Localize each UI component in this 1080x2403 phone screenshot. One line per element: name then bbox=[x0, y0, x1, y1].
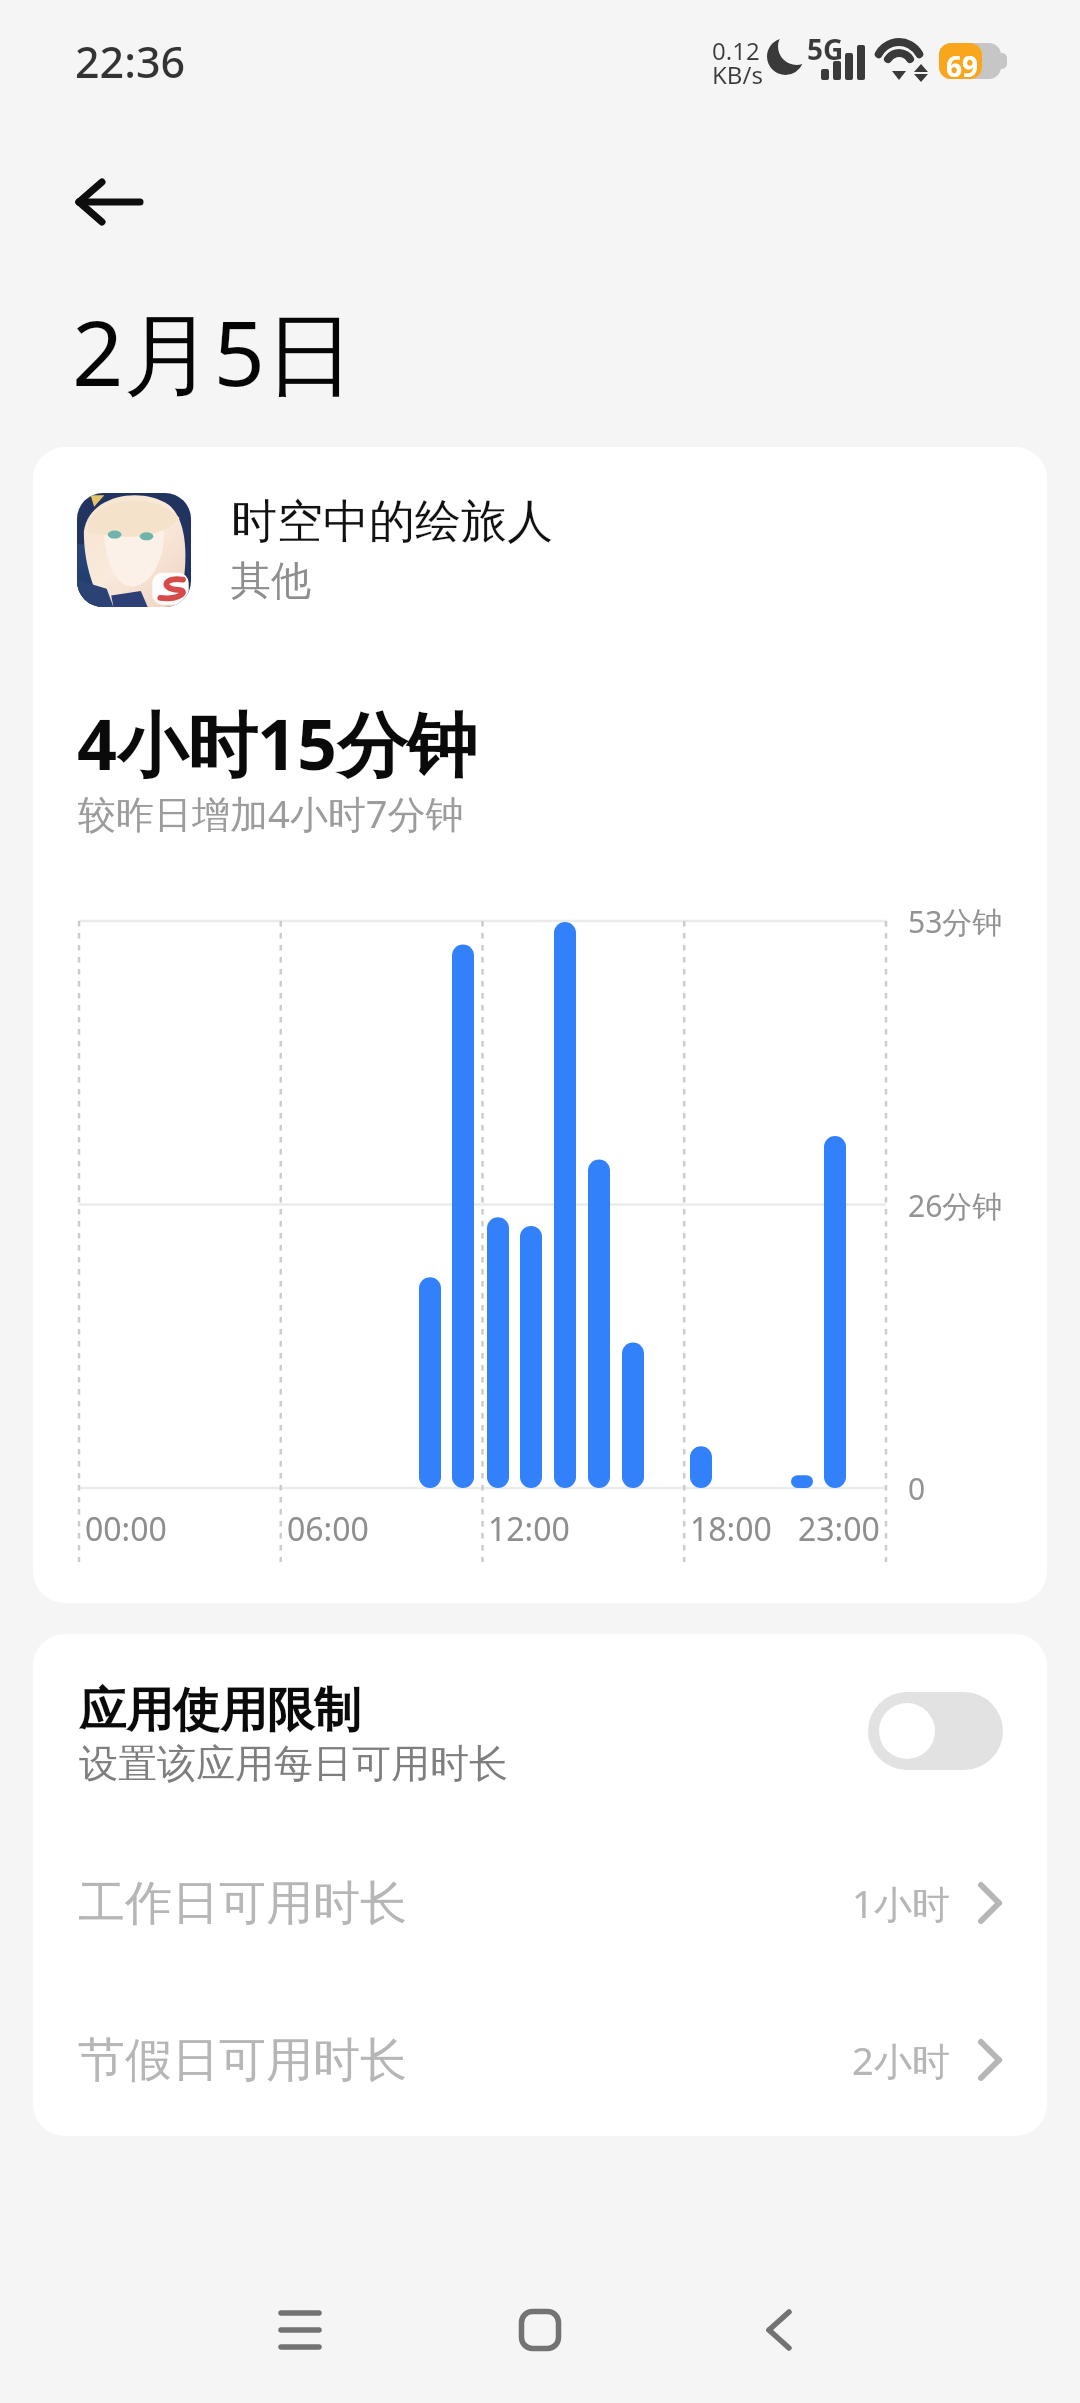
button[interactable]: 工作日可用时长 bbox=[33, 1840, 1047, 1966]
staticText: 其他 bbox=[231, 555, 311, 605]
staticText: 时空中的绘旅人 bbox=[231, 493, 553, 551]
staticText: 1小时 bbox=[852, 1877, 950, 1929]
button[interactable]: 应用使用限制 bbox=[33, 1634, 1047, 1828]
button[interactable]: Toggle app usage limit bbox=[868, 1692, 1003, 1770]
staticText: 69 bbox=[946, 47, 979, 83]
staticText: 18:00 bbox=[690, 1507, 772, 1551]
button[interactable]: 节假日可用时长 bbox=[33, 1997, 1047, 2123]
staticText: 53分钟 bbox=[908, 901, 1003, 942]
staticText: 23:00 bbox=[798, 1507, 880, 1551]
staticText: 0.12 bbox=[712, 34, 760, 67]
staticText: 00:00 bbox=[85, 1507, 167, 1551]
button[interactable]: Back bbox=[689, 2240, 869, 2403]
staticText: 2月5日 bbox=[72, 290, 355, 413]
staticText: 06:00 bbox=[287, 1507, 369, 1551]
staticText: 设置该应用每日可用时长 bbox=[79, 1739, 508, 1788]
staticText: 节假日可用时长 bbox=[78, 2031, 852, 2090]
button[interactable]: Recent apps bbox=[210, 2240, 390, 2403]
staticText: 0 bbox=[908, 1468, 926, 1509]
staticText: 12:00 bbox=[488, 1507, 570, 1551]
button[interactable]: Home bbox=[450, 2240, 630, 2403]
staticText: 较昨日增加4小时7分钟 bbox=[78, 787, 464, 839]
staticText: KB/s bbox=[712, 58, 763, 91]
button[interactable]: Back bbox=[58, 157, 160, 247]
staticText: 22:36 bbox=[75, 32, 186, 91]
staticText: 4小时15分钟 bbox=[77, 695, 478, 791]
staticText: 工作日可用时长 bbox=[78, 1874, 852, 1933]
staticText: 应用使用限制 bbox=[79, 1681, 361, 1740]
staticText: 5G bbox=[807, 30, 844, 68]
staticText: 2小时 bbox=[852, 2034, 950, 2086]
staticText: 26分钟 bbox=[908, 1185, 1003, 1226]
button[interactable]: 时空中的绘旅人 bbox=[33, 479, 1047, 621]
